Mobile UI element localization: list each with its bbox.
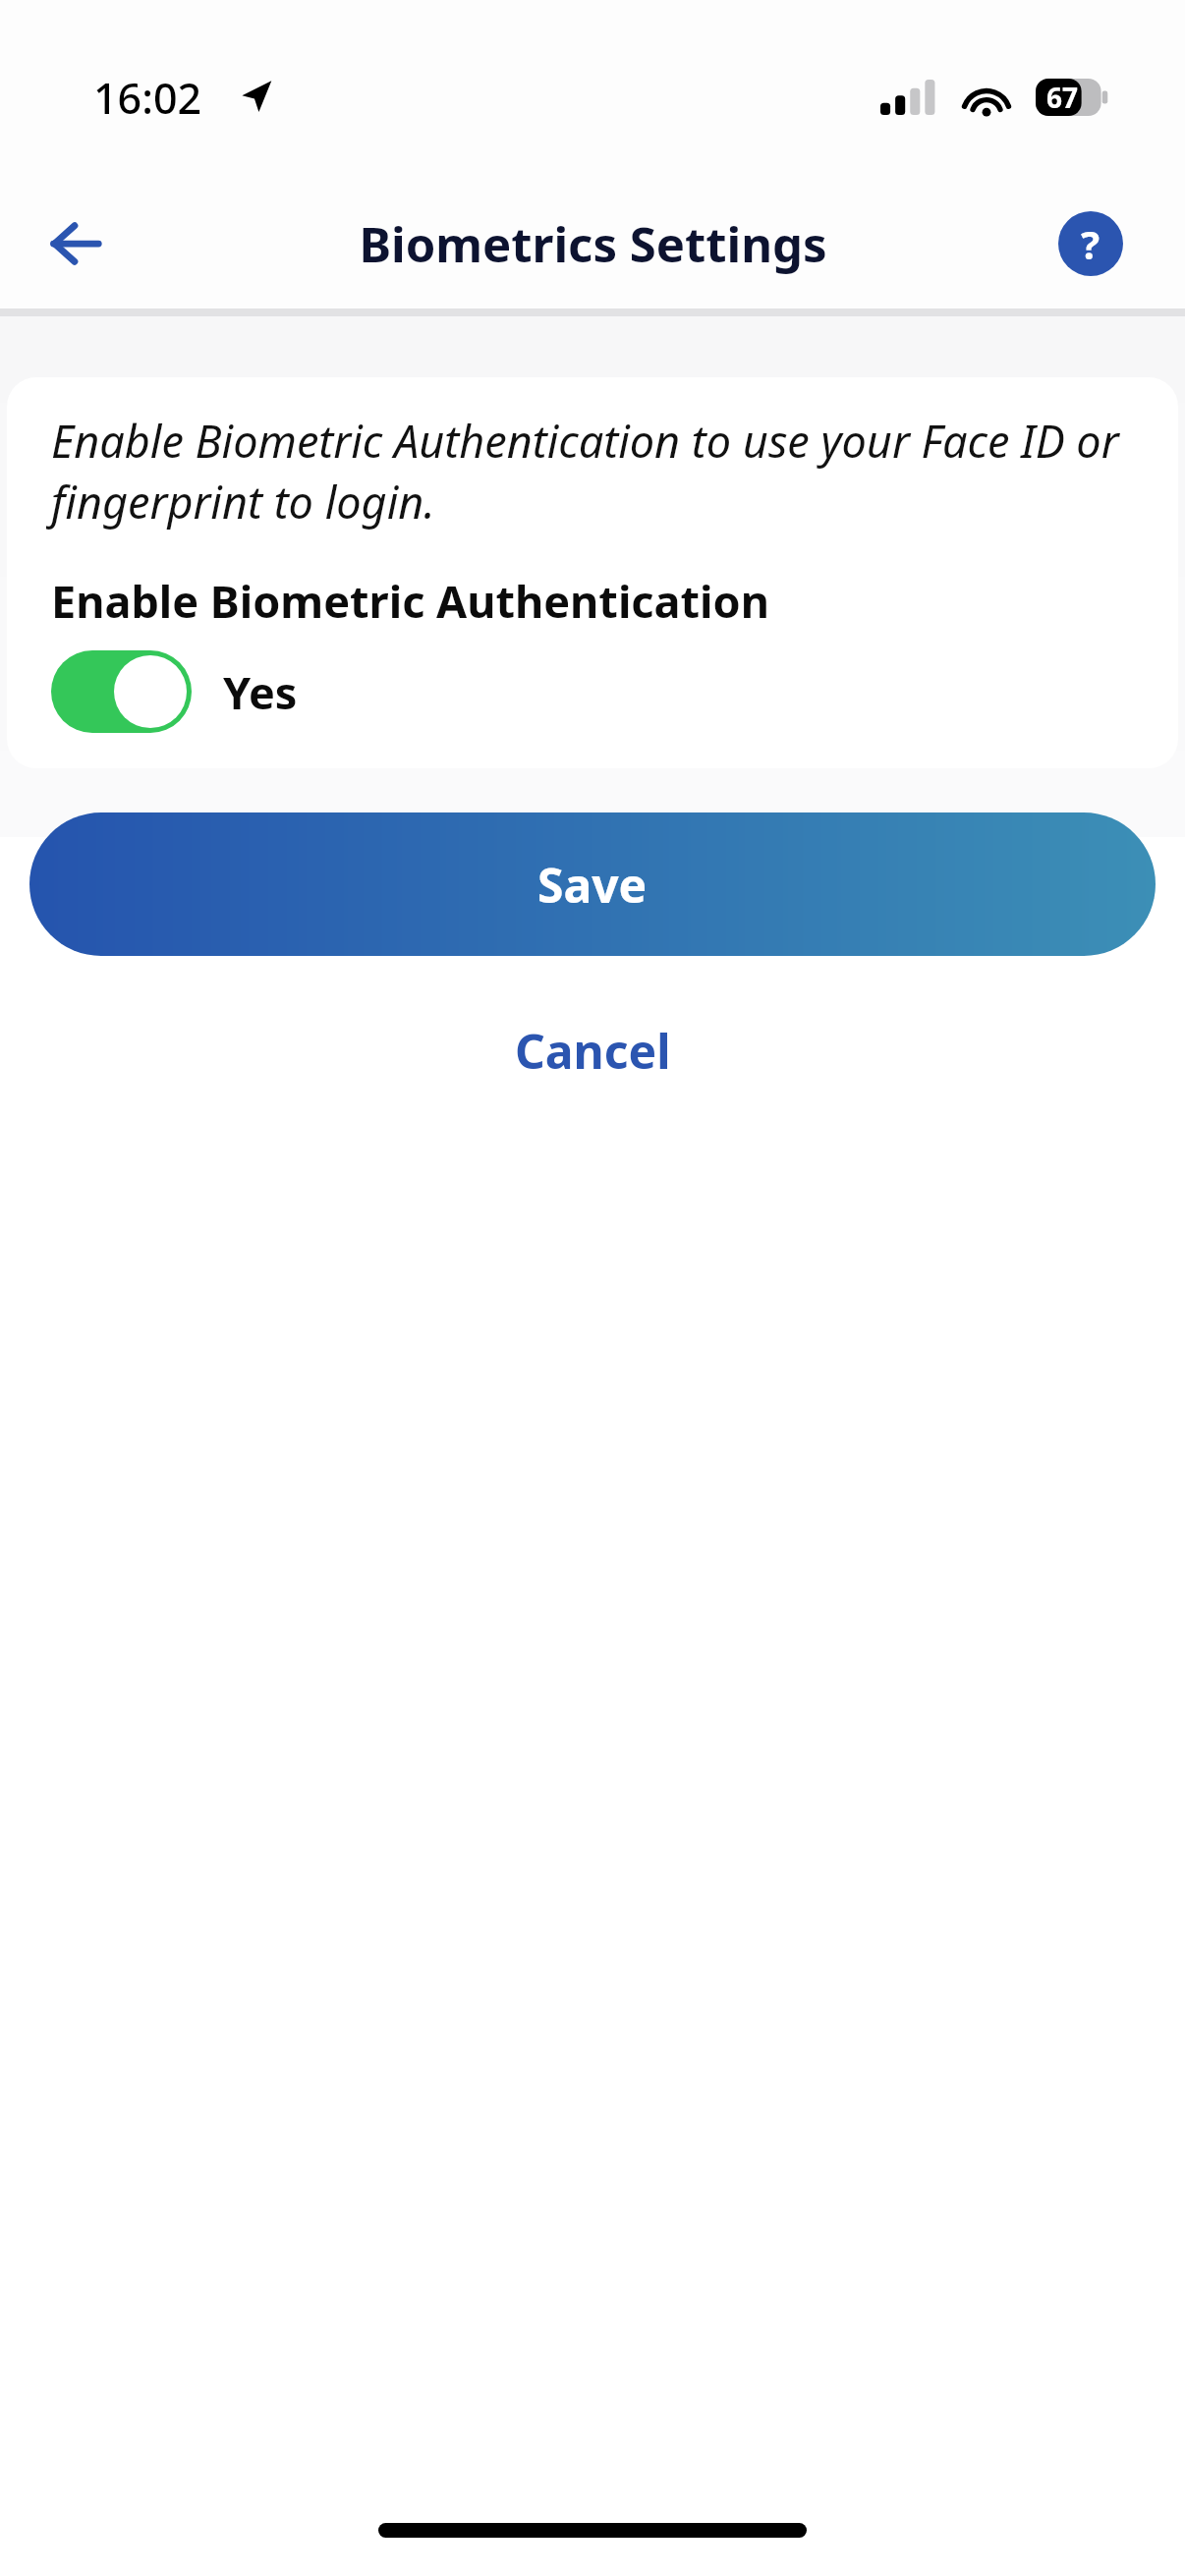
staticText: Enable Biometric Authentication: [51, 571, 769, 631]
staticText: 16:02: [93, 69, 202, 127]
staticText: Yes: [223, 662, 298, 722]
button[interactable]: Save: [29, 812, 1156, 956]
button[interactable]: Cancel: [476, 1007, 710, 1094]
staticText: Save: [537, 853, 648, 917]
staticText: 67: [1046, 79, 1079, 116]
staticText: Cancel: [515, 1019, 671, 1083]
button[interactable]: Yes: [51, 650, 298, 733]
button[interactable]: Help: [1058, 211, 1123, 276]
staticText: Enable Biometric Authentication to use y…: [51, 411, 1149, 532]
staticText: Biometrics Settings: [359, 211, 827, 277]
staticText: ?: [1081, 217, 1100, 270]
button[interactable]: Back: [39, 208, 110, 279]
